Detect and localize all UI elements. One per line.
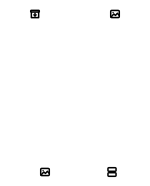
button[interactable]: List bbox=[103, 163, 121, 181]
button[interactable]: Archive bbox=[26, 5, 44, 23]
button[interactable]: Gallery bbox=[36, 163, 54, 181]
button[interactable]: Photos bbox=[106, 5, 124, 23]
